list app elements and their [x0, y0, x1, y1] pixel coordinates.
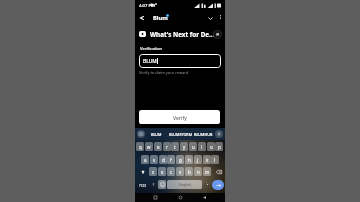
button[interactable]: t: [171, 142, 179, 151]
button[interactable]: b: [185, 167, 193, 176]
button[interactable]: Expand: [204, 12, 216, 24]
button[interactable]: n: [194, 167, 202, 176]
button[interactable]: Recents: [151, 193, 160, 202]
button[interactable]: English: [167, 180, 202, 189]
staticText: z: [152, 169, 155, 175]
staticText: 4:07 PM: [139, 3, 155, 9]
button[interactable]: m: [203, 167, 211, 176]
button[interactable]: Shift: [137, 167, 148, 176]
button[interactable]: r: [163, 142, 171, 151]
staticText: c: [170, 169, 173, 175]
button[interactable]: l: [211, 155, 219, 164]
button[interactable]: What's Next for De…: [135, 26, 225, 42]
button[interactable]: h: [185, 155, 193, 164]
button[interactable]: Back: [200, 193, 209, 202]
button[interactable]: x: [158, 167, 166, 176]
button[interactable]: o: [207, 142, 215, 151]
staticText: v: [179, 169, 182, 175]
button[interactable]: k: [203, 155, 211, 164]
button[interactable]: p: [215, 142, 223, 151]
staticText: BLUM: [143, 58, 157, 65]
staticText: m: [205, 169, 210, 175]
button[interactable]: Backspace: [213, 167, 224, 176]
staticText: q: [139, 144, 142, 150]
button[interactable]: u: [189, 142, 197, 151]
staticText: u: [192, 144, 195, 150]
button[interactable]: i: [198, 142, 206, 151]
button[interactable]: y: [180, 142, 188, 151]
staticText: j: [197, 157, 199, 163]
staticText: y: [183, 144, 186, 150]
staticText: What's Next for De…: [150, 30, 215, 39]
staticText: Verify: [173, 114, 187, 121]
staticText: a: [144, 157, 147, 163]
button[interactable]: Back: [136, 12, 148, 24]
button[interactable]: s: [150, 155, 158, 164]
staticText: Blum: [153, 14, 168, 22]
button[interactable]: More options: [215, 12, 225, 22]
button[interactable]: c: [167, 167, 175, 176]
button[interactable]: Voice input: [215, 130, 223, 138]
staticText: r: [166, 144, 168, 150]
staticText: f: [170, 157, 172, 163]
staticText: e: [157, 144, 160, 150]
staticText: d: [162, 157, 165, 163]
staticText: b: [188, 169, 191, 175]
staticText: l: [214, 157, 216, 163]
button[interactable]: d: [159, 155, 167, 164]
button[interactable]: BLUM: [151, 132, 162, 137]
button[interactable]: f: [167, 155, 175, 164]
button[interactable]: BLUMSTORM: [169, 132, 193, 137]
button[interactable]: g: [176, 155, 184, 164]
button[interactable]: w: [145, 142, 153, 151]
staticText: ?123: [139, 183, 147, 187]
button[interactable]: z: [149, 167, 157, 176]
staticText: t: [174, 144, 176, 150]
button[interactable]: a: [141, 155, 149, 164]
button[interactable]: Channel avatar: [213, 30, 222, 39]
button[interactable]: ?123: [137, 180, 148, 189]
button[interactable]: Settings: [149, 180, 157, 189]
button[interactable]: BLUMHUB: [194, 132, 213, 137]
button[interactable]: v: [176, 167, 184, 176]
button[interactable]: BLUM: [139, 54, 221, 68]
button[interactable]: Emoji: [158, 180, 166, 189]
staticText: h: [188, 157, 191, 163]
staticText: Verification: [140, 46, 163, 52]
button[interactable]: e: [154, 142, 162, 151]
staticText: w: [147, 144, 151, 150]
staticText: n: [197, 169, 200, 175]
staticText: k: [206, 157, 209, 163]
button[interactable]: j: [194, 155, 202, 164]
staticText: p: [218, 144, 221, 150]
staticText: s: [153, 157, 156, 163]
staticText: Verify to claim your reward: [139, 70, 189, 75]
button[interactable]: Period: [204, 180, 210, 189]
staticText: x: [161, 169, 164, 175]
staticText: g: [179, 157, 182, 163]
button[interactable]: Switch keyboard: [137, 130, 145, 138]
button[interactable]: q: [136, 142, 144, 151]
button[interactable]: Home: [176, 193, 185, 202]
button[interactable]: Enter: [212, 180, 224, 190]
staticText: English: [179, 182, 191, 187]
staticText: i: [201, 144, 203, 150]
staticText: o: [210, 144, 213, 150]
button[interactable]: Verify: [139, 110, 220, 124]
